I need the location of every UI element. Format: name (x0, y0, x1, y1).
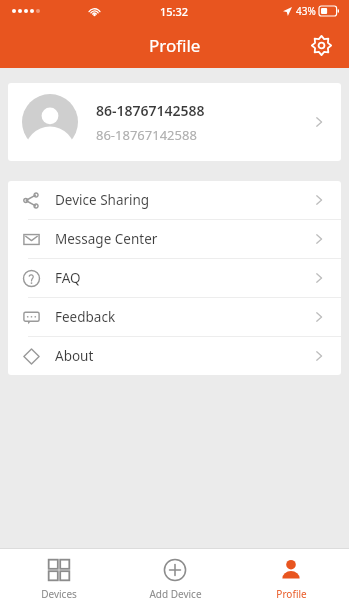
button[interactable]: Devices (0, 549, 117, 609)
staticText: Add Device (149, 587, 202, 601)
staticText: FAQ (55, 269, 311, 287)
staticText: Device Sharing (55, 191, 311, 209)
staticText: 86-18767142588 (96, 101, 205, 120)
button[interactable]: About (8, 337, 341, 375)
staticText: 15:32 (160, 4, 189, 19)
staticText: Profile (276, 587, 307, 601)
staticText: About (55, 347, 311, 365)
staticText: Feedback (55, 308, 311, 326)
button[interactable]: 86-18767142588 (8, 83, 341, 161)
staticText: 86-18767142588 (96, 126, 197, 144)
staticText: 43% (296, 4, 316, 18)
staticText: Message Center (55, 230, 311, 248)
staticText: Profile (149, 34, 201, 57)
button[interactable]: Add Device (117, 549, 233, 609)
button[interactable]: FAQ (8, 259, 341, 297)
staticText: Devices (41, 587, 77, 601)
button[interactable]: Message Center (8, 220, 341, 258)
button[interactable]: Settings (301, 25, 341, 65)
button[interactable]: Device Sharing (8, 181, 341, 219)
button[interactable]: Feedback (8, 298, 341, 336)
button[interactable]: Profile (233, 549, 349, 609)
